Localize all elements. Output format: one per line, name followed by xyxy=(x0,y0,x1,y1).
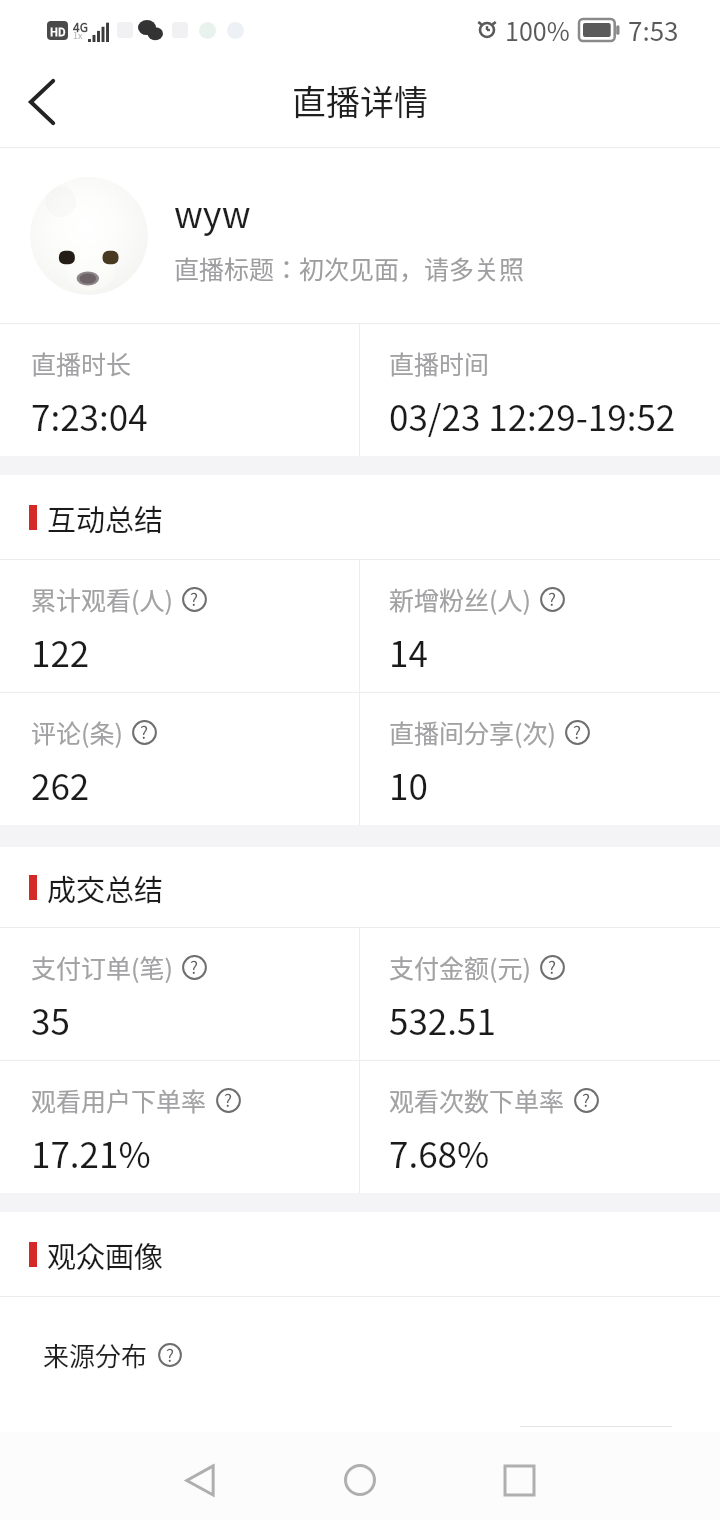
staticText: ? xyxy=(548,586,557,611)
staticText: wyw xyxy=(174,186,251,238)
staticText: ? xyxy=(140,719,149,744)
staticText: 支付金额(元) xyxy=(389,949,531,985)
staticText: 7:53 xyxy=(628,11,679,49)
staticText: 支付订单(笔) xyxy=(31,949,173,985)
staticText: 评论(条) xyxy=(31,714,123,750)
staticText: 直播时长 xyxy=(31,345,132,381)
staticText: 100% xyxy=(505,12,570,48)
staticText: 直播间分享(次) xyxy=(389,714,556,750)
staticText: 互动总结 xyxy=(47,497,164,539)
button[interactable]: 观看次数下单率 xyxy=(360,1061,720,1193)
staticText: 532.51 xyxy=(389,994,496,1045)
button[interactable]: 支付订单(笔) xyxy=(0,928,359,1060)
button[interactable]: Back xyxy=(164,1444,236,1516)
button[interactable]: 来源分布 xyxy=(0,1297,720,1407)
button[interactable]: 累计观看(人) xyxy=(0,560,359,692)
staticText: ? xyxy=(190,586,199,611)
staticText: 4G xyxy=(73,18,88,35)
staticText: ? xyxy=(166,1342,175,1366)
button[interactable]: Back xyxy=(10,70,74,134)
staticText: ? xyxy=(548,954,557,979)
staticText: 累计观看(人) xyxy=(31,581,173,617)
button[interactable]: 新增粉丝(人) xyxy=(360,560,720,692)
staticText: 直播详情 xyxy=(292,76,428,125)
staticText: 成交总结 xyxy=(47,867,164,909)
staticText: 7:23:04 xyxy=(31,390,148,441)
staticText: 14 xyxy=(389,626,428,677)
staticText: 新增粉丝(人) xyxy=(389,581,531,617)
button[interactable]: 直播时长 xyxy=(0,324,359,456)
button[interactable]: 观看用户下单率 xyxy=(0,1061,359,1193)
staticText: 03/23 12:29-19:52 xyxy=(389,390,676,441)
button[interactable]: 评论(条) xyxy=(0,693,359,825)
button[interactable]: 直播间分享(次) xyxy=(360,693,720,825)
staticText: HD xyxy=(50,23,66,39)
button[interactable]: Recent apps xyxy=(483,1444,555,1516)
staticText: 10 xyxy=(389,759,428,810)
staticText: 1x xyxy=(73,29,83,42)
staticText: 观看次数下单率 xyxy=(389,1082,565,1118)
button[interactable]: Home xyxy=(324,1444,396,1516)
button[interactable]: 直播时间 xyxy=(360,324,720,456)
staticText: 35 xyxy=(31,994,70,1045)
staticText: 直播时间 xyxy=(389,345,490,381)
button[interactable]: 支付金额(元) xyxy=(360,928,720,1060)
staticText: 直播标题：初次见面，请多关照 xyxy=(174,250,525,286)
staticText: 262 xyxy=(31,759,90,810)
staticText: 7.68% xyxy=(389,1127,490,1178)
staticText: ? xyxy=(582,1087,591,1112)
staticText: 观众画像 xyxy=(47,1234,164,1276)
staticText: 来源分布 xyxy=(43,1336,148,1374)
staticText: ? xyxy=(190,954,199,979)
staticText: 122 xyxy=(31,626,90,677)
staticText: ? xyxy=(573,719,582,744)
staticText: ? xyxy=(224,1087,233,1112)
staticText: 17.21% xyxy=(31,1127,151,1178)
staticText: 观看用户下单率 xyxy=(31,1082,207,1118)
